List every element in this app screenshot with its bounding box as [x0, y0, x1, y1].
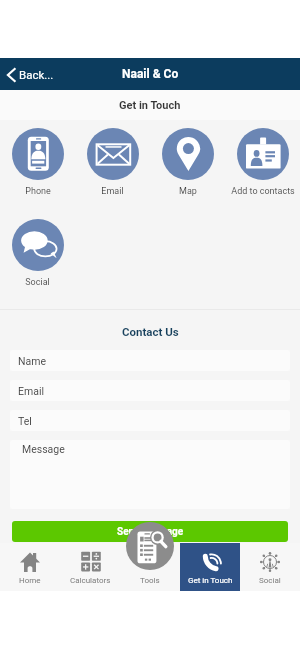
- staticText: Back...: [19, 68, 54, 81]
- button[interactable]: Tel: [10, 410, 290, 431]
- staticText: Social: [25, 277, 50, 288]
- button[interactable]: Get in Touch: [180, 543, 240, 591]
- button[interactable]: Social: [0, 219, 75, 288]
- staticText: Message: [22, 443, 65, 455]
- staticText: Send Message: [117, 526, 184, 538]
- staticText: Get in Touch: [188, 576, 233, 585]
- button[interactable]: Message: [10, 440, 290, 509]
- staticText: Contact Us: [122, 325, 179, 338]
- staticText: Tel: [18, 415, 32, 427]
- button[interactable]: Map: [150, 128, 225, 197]
- button[interactable]: Calculators: [60, 543, 120, 591]
- staticText: Map: [179, 186, 197, 197]
- button[interactable]: Phone: [0, 128, 75, 197]
- staticText: Tools: [140, 576, 160, 585]
- staticText: Get in Touch: [119, 99, 181, 112]
- staticText: Phone: [25, 186, 51, 197]
- staticText: Name: [18, 355, 46, 367]
- button[interactable]: Name: [10, 350, 290, 371]
- staticText: Add to contacts: [231, 186, 295, 197]
- button[interactable]: Send Message: [12, 521, 288, 542]
- staticText: Calculators: [70, 576, 111, 585]
- button[interactable]: Home: [0, 543, 60, 591]
- button[interactable]: Social: [240, 543, 300, 591]
- button[interactable]: Back...: [6, 58, 300, 90]
- staticText: Naail & Co: [122, 67, 179, 81]
- button[interactable]: Add to contacts: [225, 128, 300, 197]
- staticText: Email: [101, 186, 124, 197]
- button[interactable]: Tools: [120, 543, 180, 591]
- button[interactable]: Tools: [126, 522, 174, 570]
- staticText: Email: [18, 385, 44, 397]
- button[interactable]: Email: [75, 128, 150, 197]
- button[interactable]: Email: [10, 380, 290, 401]
- staticText: Social: [259, 576, 281, 585]
- staticText: Home: [19, 576, 41, 585]
